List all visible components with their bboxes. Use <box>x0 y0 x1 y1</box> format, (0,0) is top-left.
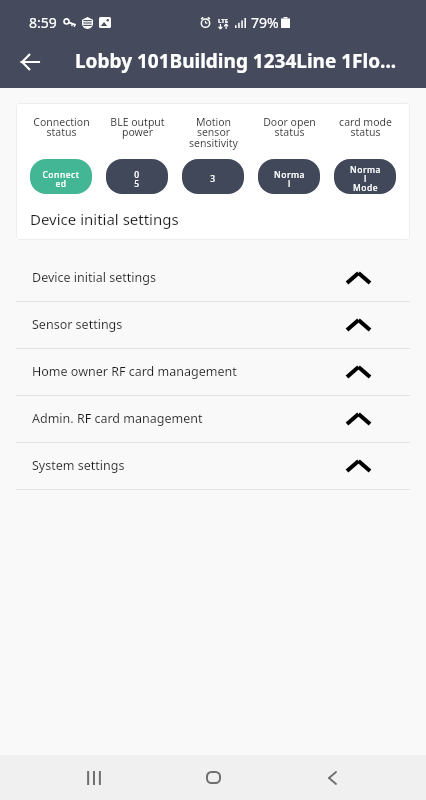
staticText: Lobby 101Building 1234Line 1Flo... <box>75 48 397 74</box>
button[interactable]: Connect ed <box>30 159 92 194</box>
button[interactable]: Norma l Mode <box>334 159 396 194</box>
staticText: Norma l Mode <box>350 164 381 193</box>
staticText: 79% <box>251 13 279 32</box>
button[interactable]: Home owner RF card management <box>0 349 426 395</box>
button[interactable]: Home <box>189 755 237 800</box>
staticText: BLE output power <box>110 115 165 139</box>
staticText: Norma l <box>274 169 305 189</box>
staticText: 0 5 <box>134 169 140 189</box>
staticText: Sensor settings <box>32 316 123 333</box>
staticText: Connection status <box>33 115 90 139</box>
staticText: System settings <box>32 457 125 474</box>
staticText: Device initial settings <box>30 209 179 229</box>
staticText: 8:59 <box>29 13 57 32</box>
button[interactable]: Recents <box>70 755 118 800</box>
button[interactable]: Back <box>308 755 356 800</box>
staticText: Connect ed <box>42 169 80 189</box>
staticText: Admin. RF card management <box>32 410 203 427</box>
button[interactable]: 3 <box>182 159 244 194</box>
staticText: Motion sensor sensitivity <box>189 115 238 150</box>
button[interactable]: Device initial settings <box>0 255 426 301</box>
staticText: Device initial settings <box>32 269 156 286</box>
button[interactable]: Admin. RF card management <box>0 396 426 442</box>
staticText: 3 <box>210 173 216 185</box>
staticText: Door open status <box>263 115 316 139</box>
button[interactable]: 0 5 <box>106 159 168 194</box>
button[interactable]: Sensor settings <box>0 302 426 348</box>
button[interactable]: Norma l <box>258 159 320 194</box>
staticText: card mode status <box>339 115 392 139</box>
button[interactable]: Back <box>9 41 51 83</box>
staticText: Home owner RF card management <box>32 363 237 380</box>
staticText: LTE <box>218 17 229 25</box>
button[interactable]: System settings <box>0 443 426 489</box>
